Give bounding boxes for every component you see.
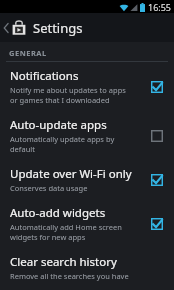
staticText: Notifications [10, 68, 79, 84]
button[interactable]: Auto-update apps [0, 111, 174, 160]
staticText: Automatically add Home screen widgets fo… [10, 222, 122, 242]
button[interactable]: Navigate up [0, 13, 89, 42]
staticText: GENERAL [9, 48, 47, 58]
button[interactable]: Checked [148, 78, 166, 96]
button[interactable]: Notifications [0, 62, 174, 111]
staticText: Notify me about updates to apps or games… [10, 85, 126, 105]
staticText: Settings [33, 19, 83, 37]
button[interactable]: Checked [148, 215, 166, 233]
staticText: 16:55 [148, 1, 172, 13]
staticText: Auto-add widgets [10, 205, 106, 221]
staticText: Update over Wi-Fi only [10, 166, 132, 182]
staticText: Auto-update apps [10, 117, 107, 133]
staticText: Conserves data usage [10, 183, 88, 193]
staticText: Clear search history [10, 254, 117, 270]
staticText: Automatically update apps by default [10, 134, 115, 154]
staticText: Remove all the searches you have perform… [10, 271, 129, 284]
button[interactable]: Checked [148, 171, 166, 189]
button[interactable]: Unchecked [148, 127, 166, 145]
button[interactable]: Clear search history [0, 248, 174, 290]
button[interactable]: Update over Wi-Fi only [0, 160, 174, 199]
button[interactable]: Auto-add widgets [0, 199, 174, 248]
